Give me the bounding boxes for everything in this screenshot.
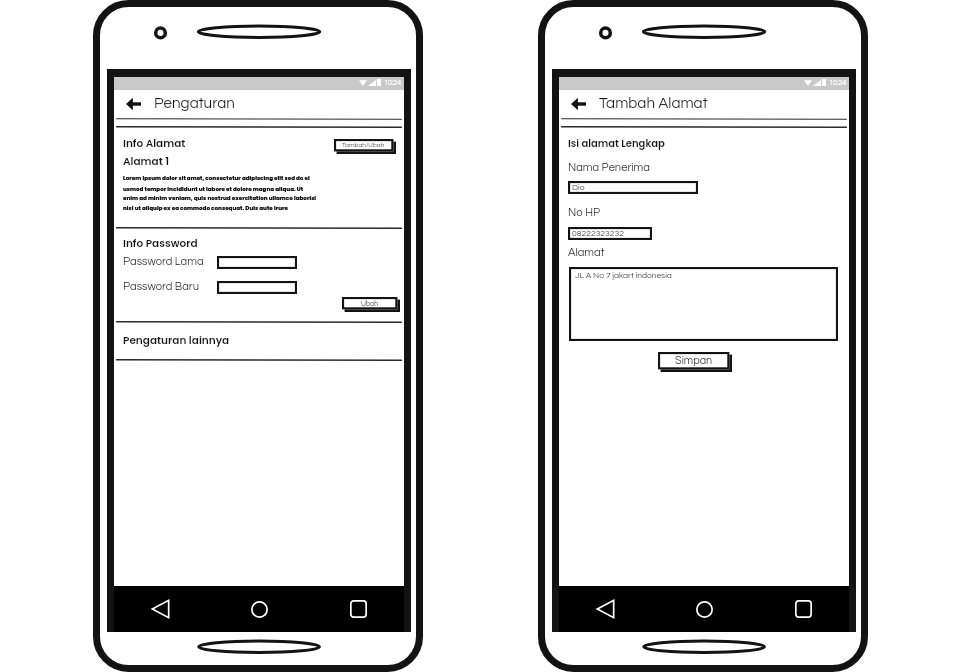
staticText: Nama Penerima [568, 162, 650, 174]
button[interactable]: Simpan [658, 352, 732, 372]
button[interactable]: Dio [568, 181, 698, 194]
staticText: Info Alamat [123, 136, 186, 151]
button[interactable]: 08222323232 [568, 227, 652, 240]
staticText: Lorem ipsum dolor sit amet, consectetur … [123, 174, 310, 182]
button[interactable]: Recent apps [789, 595, 817, 623]
staticText: Password Baru [123, 281, 200, 293]
staticText: 10:24 [829, 79, 847, 86]
staticText: Pengaturan lainnya [123, 333, 230, 348]
staticText: usmod tempor incididunt ut labore et dol… [123, 185, 304, 193]
button[interactable]: Ubah [342, 297, 400, 312]
staticText: Tambah/Ubah [342, 142, 385, 149]
staticText: Dio [572, 183, 585, 192]
button[interactable]: Navigate back [119, 90, 147, 118]
staticText: Alamat [568, 247, 605, 259]
staticText: enim ad minim veniam, quis nostrud exerc… [123, 194, 317, 202]
staticText: enim ad minim veniam, quis nostrud exerc… [123, 194, 317, 202]
staticText: usmod tempor incididunt ut labore et dol… [123, 185, 304, 193]
button[interactable]: Tambah/Ubah [334, 139, 396, 154]
staticText: Lorem ipsum dolor sit amet, consectetur … [123, 174, 310, 182]
staticText: Alamat 1 [123, 154, 170, 169]
staticText: 08222323232 [572, 229, 624, 238]
staticText: nisi ut aliquip ex ea commodo consequat.… [123, 204, 289, 212]
staticText: No HP [568, 207, 601, 219]
staticText: Tambah Alamat [599, 96, 708, 112]
staticText: 10:24 [384, 79, 402, 86]
staticText: nisi ut aliquip ex ea commodo consequat.… [123, 204, 289, 212]
button[interactable]: Back [591, 595, 619, 623]
button[interactable] [217, 256, 297, 269]
button[interactable]: Home [245, 595, 273, 623]
staticText: Password Lama [123, 256, 204, 268]
button[interactable]: Recent apps [344, 595, 372, 623]
staticText: Info Password [123, 236, 198, 251]
staticText: Pengaturan [154, 96, 235, 112]
staticText: JL A No 7 jakart indonesia [575, 271, 672, 280]
button[interactable]: Back [146, 595, 174, 623]
button[interactable] [217, 281, 297, 294]
staticText: Ubah [361, 300, 379, 307]
button[interactable]: JL A No 7 jakart indonesia [569, 267, 838, 341]
staticText: Isi alamat Lengkap [568, 136, 665, 150]
staticText: Simpan [675, 355, 713, 366]
button[interactable]: Navigate back [564, 90, 592, 118]
button[interactable]: Home [690, 595, 718, 623]
